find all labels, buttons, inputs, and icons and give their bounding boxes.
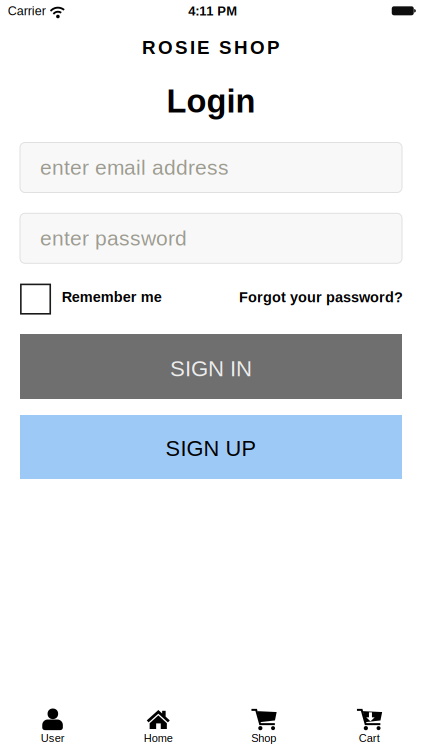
staticText: 4:11 PM — [188, 4, 237, 18]
staticText: Login — [166, 83, 255, 119]
staticText: Cart — [359, 732, 380, 744]
staticText: ROSIE SHOP — [142, 37, 280, 58]
staticText: Forgot your password? — [239, 289, 403, 305]
staticText: enter password — [40, 227, 187, 250]
staticText: Shop — [251, 732, 276, 744]
button[interactable]: Shop — [211, 694, 316, 750]
textField[interactable]: enter email address — [40, 156, 402, 179]
button[interactable]: SIGN UP — [20, 415, 402, 479]
button[interactable]: Cart — [316, 694, 422, 750]
button[interactable]: User — [0, 694, 105, 750]
staticText: Remember me — [62, 289, 162, 305]
staticText: User — [41, 732, 65, 744]
staticText: Carrier — [8, 4, 46, 18]
staticText: enter email address — [40, 156, 229, 179]
button[interactable]: SIGN IN — [20, 334, 402, 399]
button[interactable]: Forgot your password? — [239, 289, 403, 305]
staticText: SIGN IN — [170, 356, 252, 381]
staticText: Home — [144, 732, 173, 744]
button[interactable]: Remember me — [20, 284, 162, 315]
button[interactable]: Home — [105, 694, 211, 750]
textField[interactable]: enter password — [40, 227, 402, 250]
staticText: SIGN UP — [165, 436, 256, 461]
